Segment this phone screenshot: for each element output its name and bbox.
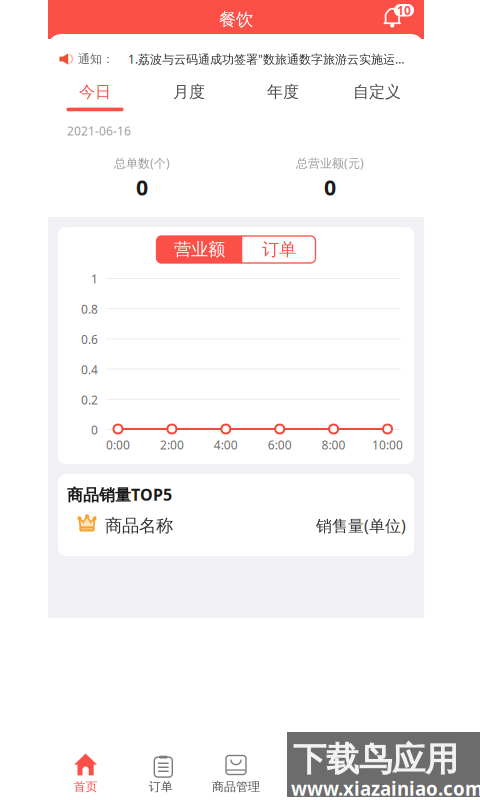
button[interactable]: 数据: [274, 726, 349, 784]
staticText: 通知：: [78, 52, 114, 66]
staticText: 商品名称: [105, 515, 173, 536]
staticText: 年度: [267, 82, 299, 102]
staticText: 月度: [173, 82, 205, 102]
staticText: 首页: [74, 779, 98, 794]
button[interactable]: 今日: [48, 73, 142, 109]
button[interactable]: 年度: [236, 73, 330, 109]
staticText: 订单: [149, 779, 173, 794]
staticText: 销售量(单位): [316, 515, 406, 536]
staticText: 0.8: [81, 301, 98, 317]
staticText: 1: [91, 271, 98, 287]
staticText: 商品销量TOP5: [67, 484, 172, 505]
staticText: 0.2: [81, 392, 98, 408]
staticText: 4:00: [214, 437, 238, 453]
button[interactable]: 首页: [48, 726, 123, 784]
staticText: 营业额: [174, 239, 225, 260]
staticText: 10: [397, 2, 411, 18]
staticText: 下载鸟应用: [293, 739, 458, 780]
button[interactable]: 我的: [349, 726, 424, 784]
staticText: 商品管理: [212, 779, 260, 794]
staticText: 0.4: [81, 362, 98, 377]
staticText: 订单: [262, 239, 296, 260]
button[interactable]: 自定义: [330, 73, 424, 109]
button[interactable]: 订单: [123, 726, 198, 784]
staticText: 0: [324, 173, 336, 201]
staticText: 8:00: [322, 437, 346, 453]
button[interactable]: 商品管理: [198, 726, 274, 784]
staticText: 今日: [79, 82, 111, 102]
staticText: 1.荔波与云码通成功签署"数旅通数字旅游云实施运…: [128, 51, 404, 67]
button[interactable]: 营业额: [156, 236, 242, 263]
staticText: 自定义: [353, 82, 401, 102]
staticText: 总单数(个): [114, 155, 170, 171]
staticText: 总营业额(元): [296, 155, 364, 171]
staticText: 餐饮: [219, 9, 253, 30]
staticText: 10:00: [372, 437, 403, 453]
staticText: 0:00: [106, 437, 130, 453]
staticText: www.xiazainiao.com: [291, 776, 480, 800]
staticText: 6:00: [268, 437, 292, 453]
button[interactable]: 订单: [242, 236, 315, 263]
staticText: 2:00: [160, 437, 184, 453]
staticText: 0: [91, 422, 98, 438]
staticText: 数据: [299, 779, 323, 794]
staticText: 0.6: [81, 331, 98, 347]
button[interactable]: 通知: [384, 2, 418, 41]
staticText: 2021-06-16: [67, 123, 131, 139]
button[interactable]: 月度: [142, 73, 236, 109]
staticText: 0: [136, 173, 148, 201]
staticText: 我的: [374, 779, 398, 794]
